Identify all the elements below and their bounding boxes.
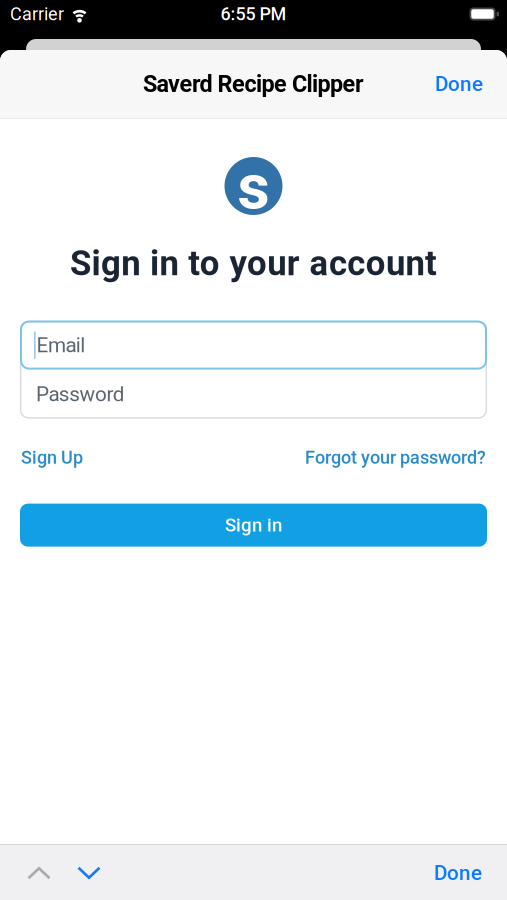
staticText: Sign Up xyxy=(21,448,83,468)
staticText: Email xyxy=(37,334,85,357)
button[interactable]: Password xyxy=(20,370,487,419)
staticText: Carrier xyxy=(10,4,64,24)
button[interactable]: Sign in xyxy=(20,504,487,547)
staticText: Done xyxy=(435,72,483,95)
button[interactable]: Email xyxy=(20,321,487,370)
staticText: Password xyxy=(36,383,125,406)
staticText: 6:55 PM xyxy=(220,4,286,24)
button[interactable]: Next field xyxy=(51,856,101,889)
button[interactable]: Previous field xyxy=(0,856,51,889)
staticText: Saverd Recipe Clipper xyxy=(143,71,364,97)
staticText: Done xyxy=(434,861,482,884)
button[interactable]: Forgot your password? xyxy=(305,448,486,468)
staticText: Sign in to your account xyxy=(70,244,437,283)
staticText: Sign in xyxy=(225,515,282,535)
button[interactable]: Done xyxy=(435,62,507,105)
button[interactable]: Sign Up xyxy=(21,448,83,468)
staticText: Forgot your password? xyxy=(305,448,486,468)
staticText: s xyxy=(237,152,269,222)
button[interactable]: Done xyxy=(434,851,507,894)
